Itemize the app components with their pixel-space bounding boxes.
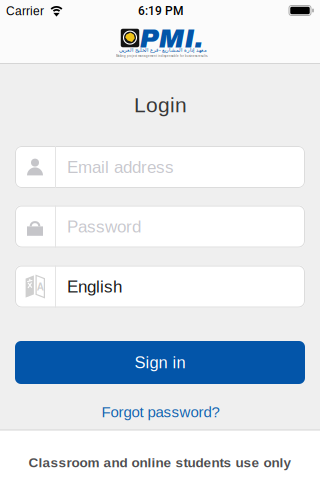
staticText: Forgot password?	[101, 404, 219, 420]
staticText: PMI.	[139, 24, 203, 53]
staticText: Classroom and online students use only	[28, 455, 291, 470]
button[interactable]: Sign in	[15, 341, 305, 384]
staticText: Making project management indispensable …	[116, 54, 208, 57]
staticText: A	[37, 281, 44, 293]
staticText: English	[67, 277, 122, 296]
staticText: Login	[134, 93, 187, 117]
staticText: Password	[67, 217, 141, 236]
button[interactable]: A	[15, 265, 305, 307]
button[interactable]: Forgot password?	[101, 404, 219, 420]
staticText: معهد إدارة المشاريع - فرع الخليج العربي	[118, 46, 206, 53]
staticText: Carrier	[6, 4, 44, 18]
staticText: Email address	[67, 157, 174, 176]
staticText: Sign in	[134, 353, 185, 372]
button[interactable]: Email address	[15, 146, 305, 188]
button[interactable]: Password	[15, 205, 305, 247]
staticText: 6:19 PM	[138, 4, 183, 18]
